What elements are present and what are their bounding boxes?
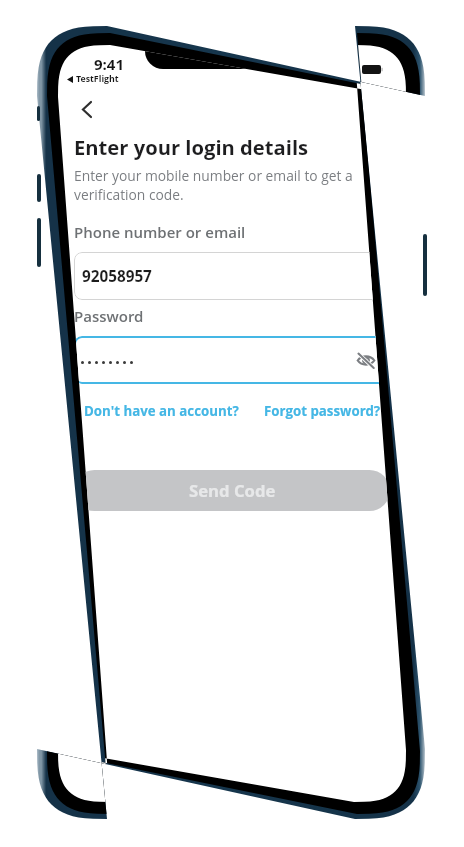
button[interactable]: Back [69, 91, 105, 127]
button[interactable]: Forgot password? [264, 402, 381, 420]
staticText: Phone number or email [74, 222, 246, 242]
staticText: Enter your mobile number or email to get… [74, 166, 390, 204]
button[interactable]: Send Code [74, 470, 390, 511]
staticText: 9:41 [94, 54, 124, 74]
button[interactable]: Don't have an account? [84, 402, 239, 420]
staticText: Send Code [189, 479, 276, 502]
button[interactable]: Show password [354, 348, 378, 372]
staticText: Password [74, 306, 144, 326]
staticText: 92058957 [82, 266, 152, 287]
staticText: TestFlight [76, 73, 119, 85]
button[interactable]: 92058957 [74, 252, 390, 300]
staticText: Enter your login details [74, 133, 309, 161]
button[interactable]: Show password [74, 336, 390, 384]
